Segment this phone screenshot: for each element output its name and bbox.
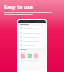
button[interactable] (19, 26, 45, 48)
button[interactable]: PDF file (20, 52, 26, 59)
button[interactable] (20, 35, 44, 39)
button[interactable] (20, 39, 44, 43)
staticText: Easy to use (4, 3, 60, 10)
button[interactable] (20, 43, 44, 47)
button[interactable]: Document (33, 52, 38, 59)
button[interactable]: Spreadsheet (27, 52, 32, 59)
button[interactable] (20, 31, 44, 35)
